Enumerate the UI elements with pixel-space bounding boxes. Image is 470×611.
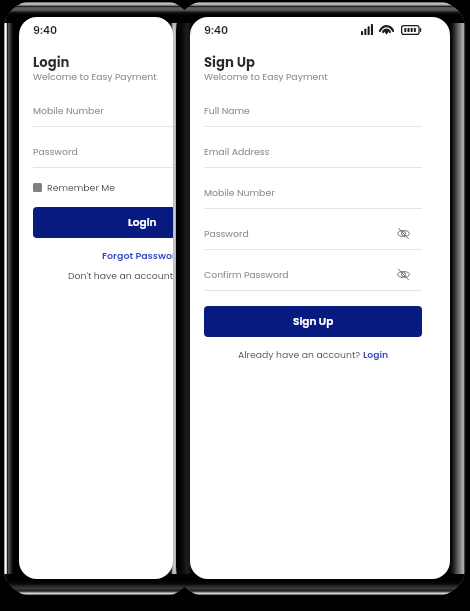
staticText: Sign Up: [204, 53, 255, 71]
staticText: Mobile Number: [33, 104, 104, 117]
staticText: Login: [33, 53, 70, 71]
staticText: Password: [204, 227, 249, 240]
staticText: Password: [33, 145, 78, 158]
staticText: Sign Up: [293, 314, 334, 329]
staticText: Login: [128, 215, 157, 230]
staticText: Welcome to Easy Payment: [33, 70, 157, 83]
button[interactable]: Forgot Password: [102, 249, 173, 262]
staticText: Email Address: [204, 145, 270, 158]
staticText: Full Name: [204, 104, 250, 117]
button[interactable]: Show password: [397, 227, 410, 240]
button[interactable]: Login: [363, 348, 389, 361]
button[interactable]: Remember Me: [33, 181, 116, 194]
staticText: 9:40: [33, 22, 58, 37]
staticText: 9:40: [204, 22, 229, 37]
button[interactable]: Login: [33, 207, 173, 238]
staticText: Remember Me: [47, 181, 116, 194]
staticText: Already have an account?: [238, 348, 363, 361]
staticText: Confirm Password: [204, 268, 289, 281]
button[interactable]: Show password: [397, 268, 410, 281]
staticText: Don't have an account?: [68, 269, 173, 282]
staticText: Welcome to Easy Payment: [204, 70, 328, 83]
staticText: Mobile Number: [204, 186, 275, 199]
button[interactable]: Sign Up: [204, 306, 422, 337]
